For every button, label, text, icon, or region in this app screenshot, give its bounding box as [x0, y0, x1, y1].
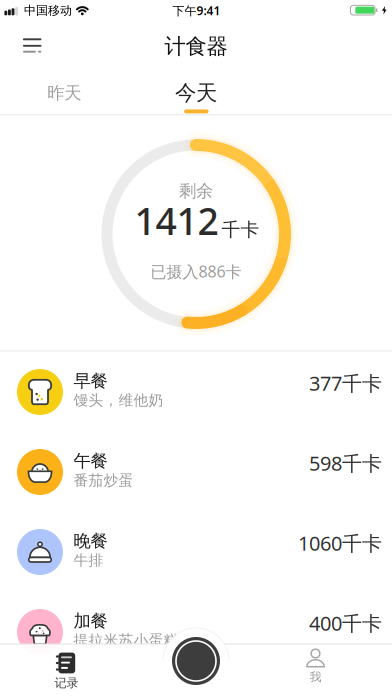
- staticText: 记录: [54, 676, 78, 690]
- button[interactable]: 今天: [156, 76, 236, 110]
- staticText: 剩余: [179, 180, 213, 202]
- button[interactable]: 记录: [46, 647, 86, 691]
- staticText: 牛排: [73, 551, 103, 569]
- staticText: 我: [309, 670, 321, 684]
- staticText: 今天: [175, 80, 217, 106]
- staticText: 598千卡: [309, 450, 382, 476]
- staticText: 已摄入886卡: [150, 261, 241, 282]
- staticText: 中国移动: [24, 3, 72, 18]
- staticText: 400千卡: [309, 610, 382, 636]
- button[interactable]: 加餐: [0, 592, 392, 672]
- button[interactable]: 昨天: [24, 76, 104, 110]
- button[interactable]: 早餐: [0, 352, 392, 432]
- staticText: 晚餐: [73, 530, 107, 552]
- staticText: 加餐: [73, 610, 107, 632]
- staticText: 昨天: [47, 82, 81, 104]
- button[interactable]: [20, 36, 45, 55]
- button[interactable]: [168, 633, 224, 689]
- staticText: 1060千卡: [298, 530, 382, 556]
- button[interactable]: 我: [295, 648, 335, 684]
- staticText: 千卡: [221, 218, 259, 241]
- staticText: 馒头，维他奶: [73, 391, 163, 409]
- staticText: 下午9:41: [172, 3, 220, 18]
- staticText: 1412: [134, 196, 218, 245]
- staticText: 午餐: [73, 450, 107, 472]
- staticText: 提拉米苏小蛋糕: [73, 631, 178, 649]
- staticText: 番茄炒蛋: [73, 471, 133, 489]
- button[interactable]: 午餐: [0, 432, 392, 512]
- staticText: 计食器: [164, 33, 227, 60]
- staticText: 早餐: [73, 370, 107, 392]
- staticText: 377千卡: [309, 370, 382, 396]
- button[interactable]: 晚餐: [0, 512, 392, 592]
